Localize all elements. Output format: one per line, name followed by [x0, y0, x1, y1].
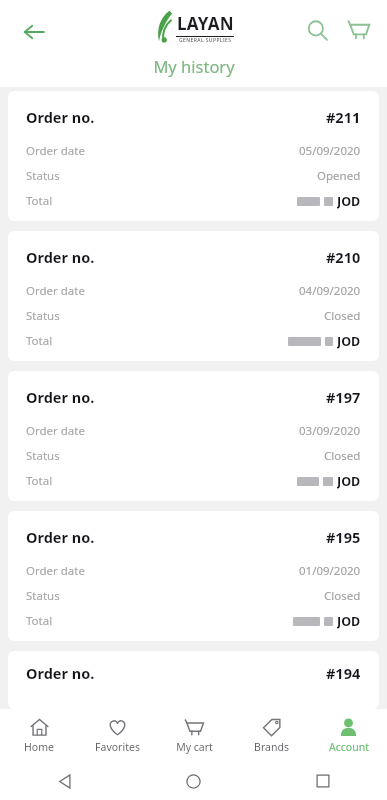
staticText: GENERAL SUPPLIES — [179, 37, 232, 44]
staticText: JOD — [337, 613, 361, 629]
staticText: 01/09/2020 — [299, 563, 361, 579]
staticText: #210 — [326, 247, 361, 267]
staticText: Account — [329, 740, 369, 754]
staticText: Total — [26, 333, 53, 349]
staticText: Home — [24, 740, 54, 754]
staticText: Brands — [254, 740, 289, 754]
staticText: 03/09/2020 — [299, 423, 361, 439]
staticText: Status — [26, 588, 60, 604]
staticText: Status — [26, 448, 60, 464]
staticText: JOD — [337, 333, 361, 349]
button[interactable]: Search — [297, 10, 337, 50]
button[interactable]: Back — [12, 10, 56, 54]
button[interactable]: Cart — [339, 10, 379, 50]
staticText: Status — [26, 308, 60, 324]
staticText: Order no. — [26, 527, 95, 547]
staticText: Order no. — [26, 387, 95, 407]
staticText: Order no. — [26, 107, 95, 127]
staticText: LAYAN — [177, 12, 234, 35]
staticText: 04/09/2020 — [299, 283, 361, 299]
staticText: My cart — [176, 740, 213, 754]
button[interactable]: My cart — [156, 709, 233, 762]
staticText: Opened — [317, 168, 361, 184]
staticText: My history — [153, 55, 235, 77]
staticText: Order date — [26, 143, 85, 159]
button[interactable]: Brands — [233, 709, 310, 762]
button[interactable]: Favorites — [78, 709, 156, 762]
button[interactable]: Recents — [258, 762, 387, 800]
staticText: Closed — [324, 448, 361, 464]
button[interactable]: Back — [0, 762, 129, 800]
staticText: 05/09/2020 — [299, 143, 361, 159]
staticText: Order date — [26, 563, 85, 579]
staticText: Status — [26, 168, 60, 184]
button[interactable]: Order no. — [8, 91, 379, 221]
staticText: Closed — [324, 588, 361, 604]
staticText: Favorites — [95, 740, 140, 754]
button[interactable]: Order no. — [8, 231, 379, 361]
staticText: Total — [26, 473, 53, 489]
staticText: Total — [26, 193, 53, 209]
staticText: JOD — [337, 473, 361, 489]
staticText: #194 — [326, 663, 361, 683]
button[interactable]: Home — [129, 762, 258, 800]
staticText: JOD — [337, 193, 361, 209]
button[interactable]: Account — [310, 709, 387, 762]
staticText: Order date — [26, 423, 85, 439]
button[interactable]: Order no. — [8, 371, 379, 501]
staticText: Order no. — [26, 663, 95, 683]
button[interactable]: Home — [0, 709, 78, 762]
staticText: #211 — [326, 107, 361, 127]
staticText: Total — [26, 613, 53, 629]
button[interactable]: Order no. — [8, 651, 379, 709]
staticText: Order date — [26, 283, 85, 299]
staticText: #197 — [326, 387, 361, 407]
button[interactable]: Order no. — [8, 511, 379, 641]
staticText: Order no. — [26, 247, 95, 267]
staticText: #195 — [326, 527, 361, 547]
staticText: Closed — [324, 308, 361, 324]
